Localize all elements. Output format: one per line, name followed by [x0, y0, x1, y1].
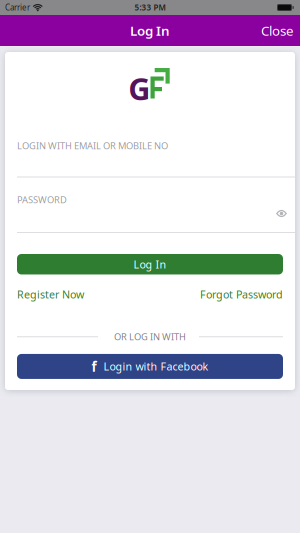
- button[interactable]: Close: [261, 14, 300, 47]
- staticText: PASSWORD: [17, 193, 67, 206]
- staticText: Log In: [133, 257, 166, 271]
- staticText: Forgot Password: [200, 287, 283, 302]
- staticText: Register Now: [17, 287, 84, 302]
- button[interactable]: Register Now: [17, 287, 84, 302]
- button[interactable]: Show password: [276, 209, 295, 217]
- staticText: Close: [261, 22, 294, 39]
- button[interactable]: Forgot Password: [200, 287, 283, 302]
- staticText: 5:33 PM: [134, 2, 165, 13]
- staticText: G: [128, 68, 150, 109]
- staticText: Carrier: [5, 2, 30, 13]
- staticText: LOGIN WITH EMAIL OR MOBILE NO: [17, 139, 168, 152]
- staticText: OR LOG IN WITH: [114, 331, 186, 343]
- staticText: Login with Facebook: [103, 359, 208, 374]
- button[interactable]: Log In: [17, 254, 283, 274]
- button[interactable]: f: [17, 354, 283, 379]
- staticText: Log In: [130, 22, 170, 39]
- staticText: f: [91, 358, 96, 375]
